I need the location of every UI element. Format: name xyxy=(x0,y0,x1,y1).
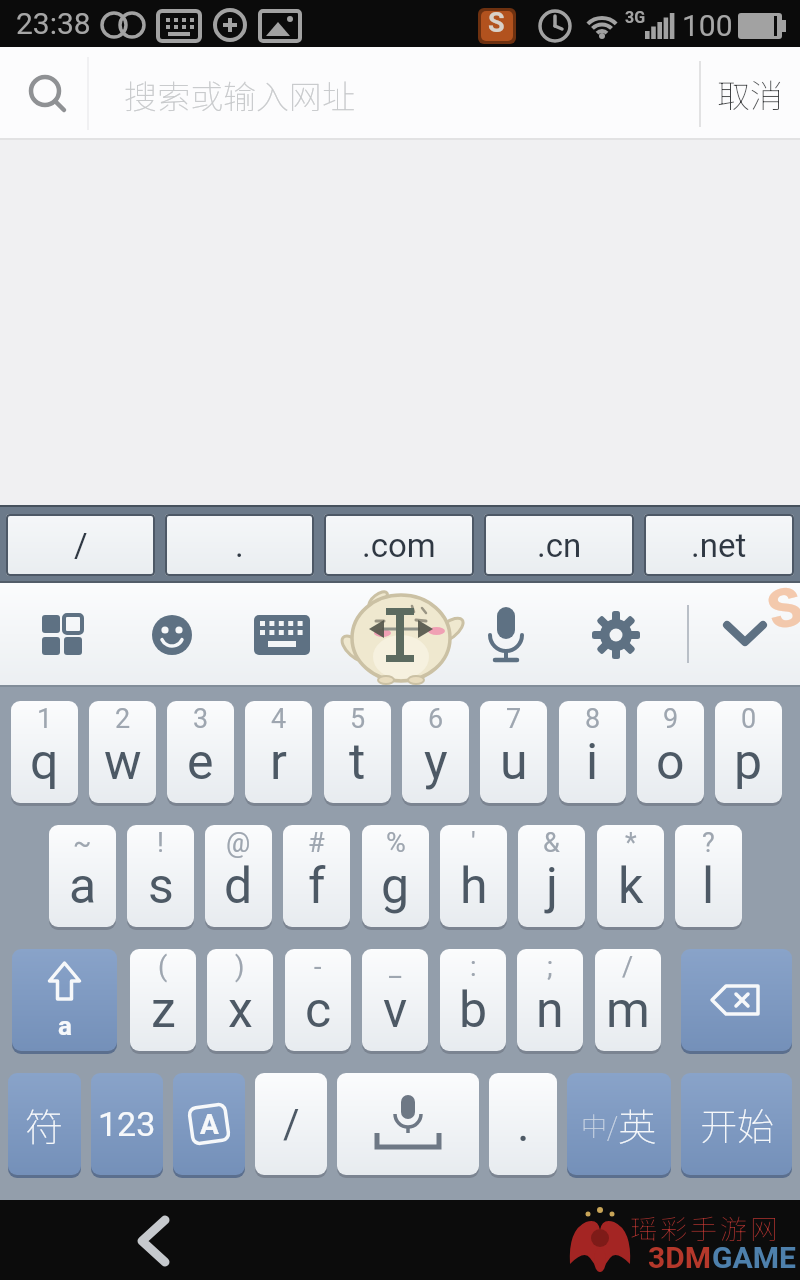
button[interactable]: ' xyxy=(440,825,507,927)
staticText: 100 xyxy=(682,8,733,43)
staticText: j xyxy=(546,857,558,916)
button[interactable]: 3 xyxy=(167,701,234,803)
staticText: p xyxy=(734,733,763,792)
staticText: .net xyxy=(691,526,747,565)
button[interactable] xyxy=(681,949,792,1051)
button[interactable]: 4 xyxy=(245,701,312,803)
button[interactable]: 0 xyxy=(715,701,782,803)
button[interactable]: ~ xyxy=(49,825,116,927)
staticText: a xyxy=(58,1011,72,1041)
staticText: q xyxy=(30,733,59,792)
button[interactable]: 9 xyxy=(637,701,704,803)
staticText: u xyxy=(500,733,528,792)
staticText: c xyxy=(305,981,332,1040)
staticText: e xyxy=(187,733,214,792)
button[interactable]: 取消 xyxy=(700,47,800,140)
button[interactable]: # xyxy=(283,825,350,927)
button[interactable] xyxy=(0,47,700,140)
button[interactable]: ( xyxy=(130,949,196,1051)
staticText: m xyxy=(606,981,650,1040)
button[interactable]: 7 xyxy=(480,701,547,803)
button[interactable]: ? xyxy=(675,825,742,927)
staticText: . xyxy=(235,526,244,565)
button[interactable]: a xyxy=(12,949,117,1051)
button[interactable]: 5 xyxy=(324,701,391,803)
button[interactable]: : xyxy=(440,949,506,1051)
staticText: f xyxy=(308,857,326,916)
staticText: ? xyxy=(702,827,715,859)
button[interactable]: _ xyxy=(362,949,428,1051)
button[interactable]: ; xyxy=(517,949,583,1051)
button[interactable]: / xyxy=(255,1073,327,1175)
staticText: / xyxy=(622,951,634,983)
staticText: g xyxy=(381,857,410,916)
button[interactable]: & xyxy=(518,825,585,927)
button[interactable]: * xyxy=(597,825,664,927)
button[interactable] xyxy=(716,609,776,661)
button[interactable]: .com xyxy=(324,514,474,576)
button[interactable]: @ xyxy=(205,825,272,927)
button[interactable] xyxy=(252,611,312,659)
button[interactable] xyxy=(110,1210,200,1272)
button[interactable] xyxy=(337,1073,479,1175)
staticText: 1 xyxy=(37,703,53,735)
button[interactable]: % xyxy=(362,825,429,927)
staticText: k xyxy=(618,857,644,916)
staticText: 7 xyxy=(506,703,522,735)
staticText: ~ xyxy=(73,827,92,859)
staticText: 英 xyxy=(618,1097,657,1152)
staticText: _ xyxy=(389,951,402,983)
staticText: ! xyxy=(157,827,164,859)
button[interactable] xyxy=(34,607,90,663)
staticText: 5 xyxy=(350,703,366,735)
staticText: # xyxy=(308,827,325,859)
staticText: 符 xyxy=(25,1097,64,1152)
button[interactable]: A xyxy=(173,1073,245,1175)
staticText: ; xyxy=(547,951,553,983)
staticText: * xyxy=(625,827,637,859)
button[interactable] xyxy=(144,607,200,663)
button[interactable]: 2 xyxy=(89,701,156,803)
staticText: x xyxy=(228,981,253,1040)
staticText: i xyxy=(586,733,599,792)
staticText: v xyxy=(383,981,408,1040)
staticText: % xyxy=(386,827,406,859)
staticText: y xyxy=(424,733,448,792)
button[interactable]: . xyxy=(489,1073,557,1175)
button[interactable]: ! xyxy=(127,825,194,927)
staticText: S xyxy=(761,574,800,643)
button[interactable]: 符 xyxy=(8,1073,81,1175)
staticText: 开始 xyxy=(700,1097,774,1151)
staticText: @ xyxy=(226,827,251,859)
staticText: / xyxy=(283,1101,300,1148)
staticText: / xyxy=(74,526,88,565)
button[interactable]: 8 xyxy=(559,701,626,803)
button[interactable]: / xyxy=(6,514,155,576)
staticText: 3G xyxy=(625,8,646,27)
staticText: S xyxy=(488,7,505,39)
staticText: z xyxy=(151,981,176,1040)
button[interactable]: ) xyxy=(207,949,273,1051)
staticText: ( xyxy=(158,951,168,983)
button[interactable]: 中/ xyxy=(567,1073,671,1175)
button[interactable] xyxy=(478,605,534,667)
button[interactable] xyxy=(588,607,644,663)
staticText: d xyxy=(224,857,253,916)
button[interactable]: 1 xyxy=(11,701,78,803)
staticText: w xyxy=(104,733,142,792)
staticText: a xyxy=(69,857,97,916)
button[interactable]: - xyxy=(285,949,351,1051)
staticText: 23:38 xyxy=(16,6,91,41)
button[interactable]: 开始 xyxy=(681,1073,792,1175)
staticText: - xyxy=(314,951,322,983)
button[interactable]: 123 xyxy=(91,1073,163,1175)
staticText: 9 xyxy=(663,703,679,735)
staticText: .com xyxy=(362,526,436,565)
button[interactable]: 6 xyxy=(402,701,469,803)
button[interactable]: .net xyxy=(644,514,794,576)
staticText: ) xyxy=(235,951,245,983)
button[interactable]: .cn xyxy=(484,514,634,576)
button[interactable]: . xyxy=(165,514,314,576)
button[interactable]: / xyxy=(595,949,661,1051)
staticText: n xyxy=(536,981,564,1040)
